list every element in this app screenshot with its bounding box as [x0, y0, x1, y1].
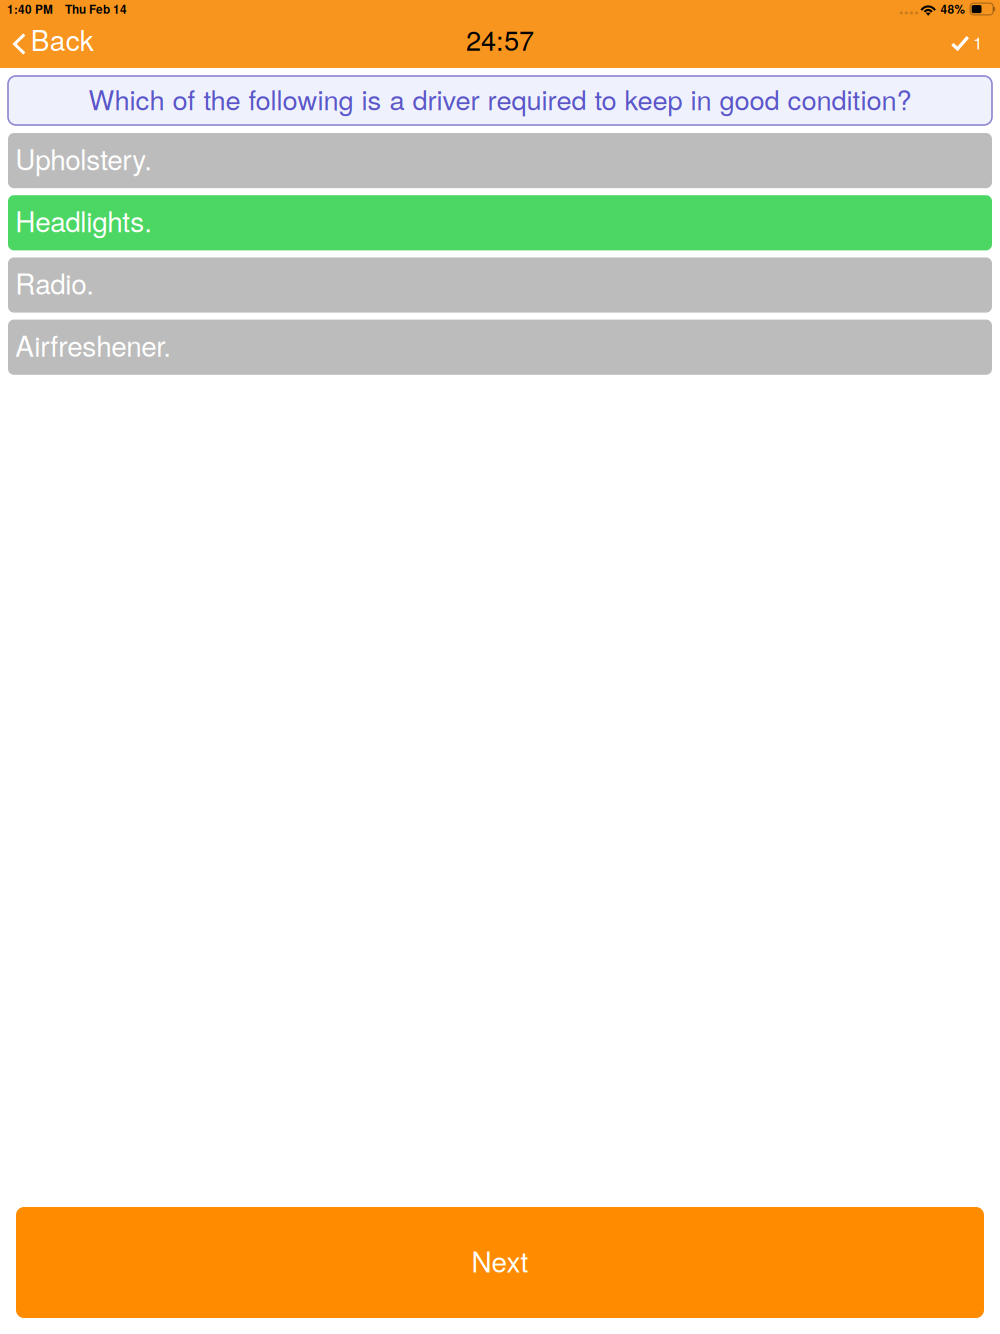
button[interactable]: Radio.: [8, 257, 992, 313]
staticText: Next: [471, 1240, 528, 1281]
staticText: Back: [31, 19, 94, 59]
button[interactable]: Upholstery.: [8, 133, 992, 188]
staticText: 1: [973, 30, 983, 54]
button[interactable]: Answered count: [951, 22, 1000, 58]
button[interactable]: Next: [16, 1207, 984, 1318]
staticText: Headlights.: [15, 200, 152, 240]
staticText: Thu Feb 14: [65, 1, 127, 17]
button[interactable]: Back: [0, 14, 94, 66]
staticText: Upholstery.: [15, 138, 152, 178]
button[interactable]: Headlights.: [8, 195, 992, 250]
staticText: Which of the following is a driver requi…: [88, 79, 911, 118]
staticText: Radio.: [15, 262, 94, 302]
staticText: 1:40 PM: [7, 1, 53, 17]
staticText: 48%: [940, 1, 964, 17]
staticText: 24:57: [466, 19, 534, 58]
button[interactable]: Airfreshener.: [8, 320, 992, 375]
staticText: Airfreshener.: [15, 325, 171, 365]
